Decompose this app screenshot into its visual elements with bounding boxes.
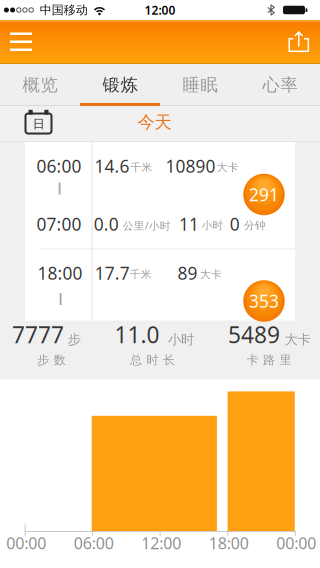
staticText: 12:00 bbox=[144, 2, 175, 18]
staticText: 大卡 bbox=[284, 331, 310, 348]
button[interactable]: 概览 bbox=[0, 64, 80, 105]
staticText: 今天 bbox=[137, 112, 171, 133]
button[interactable] bbox=[283, 26, 317, 58]
staticText: 07:00 bbox=[36, 212, 81, 235]
staticText: 千米 bbox=[130, 161, 152, 174]
staticText: 12:00 bbox=[141, 532, 181, 554]
button[interactable]: 睡眠 bbox=[160, 64, 240, 105]
staticText: 06:00 bbox=[36, 154, 81, 177]
staticText: 06:00 bbox=[74, 532, 114, 554]
staticText: 291 bbox=[249, 183, 279, 206]
staticText: 日 bbox=[33, 117, 45, 131]
staticText: 0 bbox=[230, 212, 240, 235]
staticText: 0.0 bbox=[94, 212, 119, 235]
staticText: 分钟 bbox=[244, 219, 266, 232]
staticText: 11.0 bbox=[114, 319, 159, 349]
staticText: 大卡 bbox=[217, 161, 239, 174]
staticText: 00:00 bbox=[6, 532, 46, 554]
button[interactable]: 18:00 bbox=[25, 248, 295, 320]
button[interactable]: 今天 bbox=[114, 105, 194, 141]
button[interactable]: 06:00 bbox=[25, 142, 295, 248]
staticText: 14.6 bbox=[94, 154, 129, 177]
staticText: 锻炼 bbox=[102, 74, 137, 96]
staticText: 18:00 bbox=[37, 261, 82, 284]
staticText: 11 bbox=[179, 212, 199, 235]
staticText: 心率 bbox=[262, 74, 297, 96]
button[interactable]: 心率 bbox=[240, 64, 320, 105]
staticText: 小时 bbox=[202, 219, 224, 232]
staticText: 10890 bbox=[165, 154, 215, 177]
staticText: 小时 bbox=[168, 331, 194, 348]
staticText: 17.7 bbox=[95, 261, 130, 284]
staticText: 353 bbox=[249, 289, 279, 312]
button[interactable] bbox=[4, 26, 40, 58]
button[interactable]: 锻炼 bbox=[80, 64, 160, 105]
staticText: 18:00 bbox=[209, 532, 249, 554]
staticText: 7777 bbox=[12, 319, 64, 349]
staticText: 千米 bbox=[130, 268, 152, 281]
button[interactable]: 日 bbox=[20, 106, 56, 141]
staticText: 步数 bbox=[37, 353, 66, 367]
staticText: 步 bbox=[68, 331, 81, 348]
staticText: 中国移动 bbox=[40, 3, 88, 17]
staticText: 卡路里 bbox=[246, 353, 291, 367]
staticText: 睡眠 bbox=[182, 74, 217, 96]
staticText: 总时长 bbox=[130, 353, 175, 367]
staticText: 概览 bbox=[22, 74, 57, 96]
staticText: 大卡 bbox=[200, 268, 222, 281]
staticText: 00:00 bbox=[276, 532, 316, 554]
staticText: 5489 bbox=[228, 319, 280, 349]
staticText: 公里/小时 bbox=[123, 218, 171, 233]
staticText: 89 bbox=[177, 261, 197, 284]
